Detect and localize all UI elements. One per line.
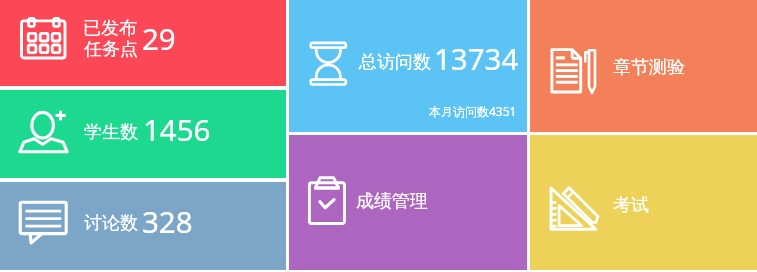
staticText: 成绩管理 [356, 190, 428, 213]
button[interactable]: 考试 [530, 135, 757, 270]
staticText: 考试 [613, 194, 649, 217]
staticText: 学生数 [84, 121, 138, 144]
staticText: 总访问数 [359, 51, 431, 74]
staticText: 13734 [434, 38, 519, 78]
staticText: 本月访问数4351 [429, 103, 517, 119]
staticText: 29 [142, 18, 176, 58]
button[interactable]: 讨论数 328 [0, 182, 286, 270]
button[interactable]: 学生数 1456 [0, 90, 286, 178]
button[interactable]: 已发布任务点 29 [0, 0, 286, 86]
staticText: 328 [142, 201, 193, 241]
button[interactable]: 总访问数 13734 [289, 0, 527, 132]
staticText: 讨论数 [84, 212, 138, 235]
staticText: 章节测验 [613, 56, 685, 79]
staticText: 任务点 [84, 38, 138, 61]
staticText: 1456 [143, 109, 211, 149]
button[interactable]: 章节测验 [530, 0, 757, 132]
button[interactable]: 成绩管理 [289, 135, 527, 270]
staticText: 已发布 [83, 17, 137, 40]
